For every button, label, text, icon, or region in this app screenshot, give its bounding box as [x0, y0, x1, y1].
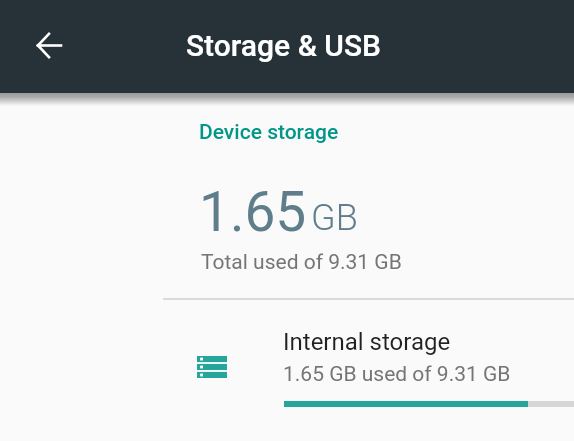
staticText: Internal storage — [283, 328, 451, 356]
staticText: Device storage — [199, 120, 339, 145]
staticText: 1.65 — [199, 180, 307, 244]
staticText: Storage & USB — [186, 28, 381, 63]
button[interactable]: Back — [25, 21, 73, 69]
staticText: 1.65 GB used of 9.31 GB — [283, 362, 511, 387]
button[interactable]: Internal storage — [0, 310, 574, 441]
staticText: Total used of 9.31 GB — [201, 250, 402, 275]
staticText: GB — [311, 197, 358, 239]
